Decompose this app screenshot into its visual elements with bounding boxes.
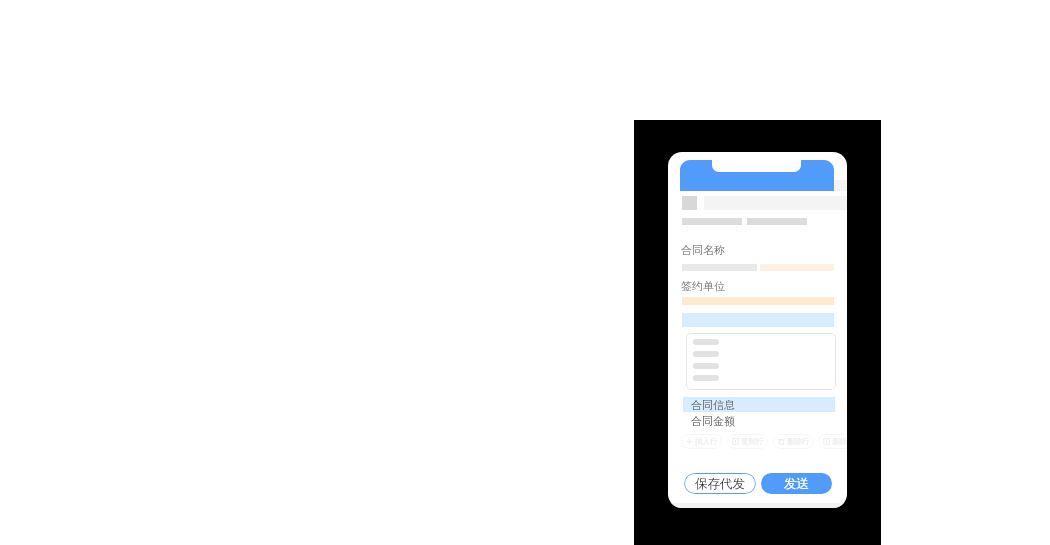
staticText: 发送 [784, 476, 809, 492]
staticText: 合同金额 [691, 414, 735, 428]
button[interactable] [686, 333, 836, 390]
button[interactable]: 删除行 [773, 434, 814, 449]
button[interactable]: 复制行 [727, 434, 768, 449]
button[interactable]: 合同信息 [683, 397, 835, 412]
button[interactable]: 删除列 [818, 434, 847, 449]
button[interactable]: Search [682, 196, 847, 210]
button[interactable]: 保存代发 [684, 473, 756, 494]
button[interactable]: 合同金额 [683, 413, 835, 428]
staticText: 删除行 [787, 437, 810, 446]
staticText: 合同信息 [691, 398, 735, 412]
staticText: 保存代发 [695, 476, 745, 492]
button[interactable]: 发送 [761, 473, 832, 494]
button[interactable]: 插入行 [681, 434, 722, 449]
staticText: 复制行 [741, 437, 764, 446]
staticText: 插入行 [695, 437, 718, 446]
staticText: 签约单位 [681, 279, 725, 293]
staticText: 删除列 [832, 437, 847, 446]
staticText: 合同名称 [681, 243, 725, 257]
